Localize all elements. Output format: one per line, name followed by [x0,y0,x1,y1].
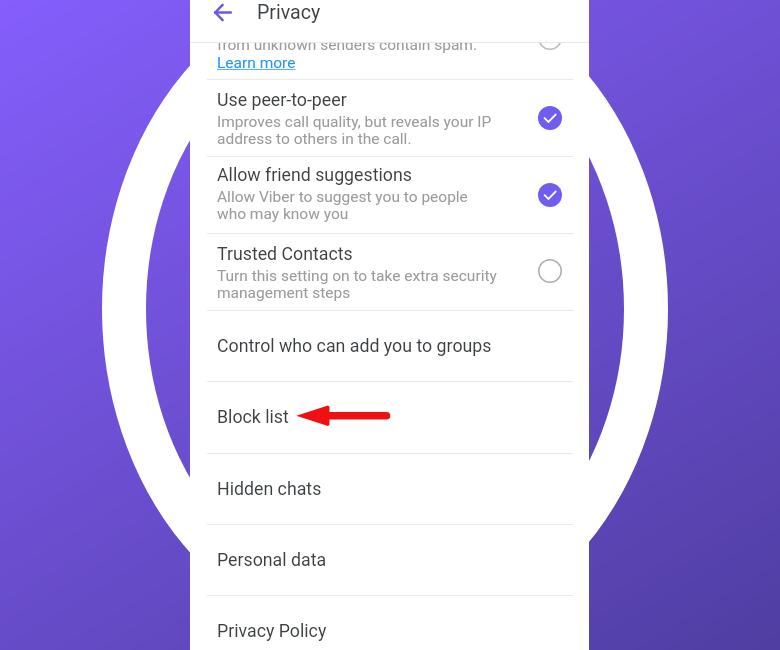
staticText: Turn this setting on to take extra secur… [217,267,497,302]
button[interactable]: Trusted Contacts [190,233,589,310]
button[interactable]: Personal data [190,524,589,596]
button[interactable]: Allow friend suggestions [532,177,568,213]
button[interactable]: Hidden chats [190,453,589,524]
button[interactable]: Control who can add you to groups [190,310,589,381]
staticText: Use peer-to-peer [217,90,347,111]
staticText: Allow Viber to suggest you to people who… [217,188,468,223]
staticText: Allow friend suggestions [217,165,412,186]
staticText: Trusted Contacts [217,244,353,265]
button[interactable]: from unknown senders contain spam. [190,43,589,79]
staticText: Learn more [217,54,296,72]
button[interactable]: Privacy Policy [190,595,589,650]
staticText: Personal data [217,550,327,571]
staticText: from unknown senders contain spam. [217,36,478,54]
button[interactable]: Use peer-to-peer [190,79,589,156]
staticText: Privacy [257,1,321,24]
staticText: Hidden chats [217,479,322,500]
button[interactable]: Block list [190,381,589,453]
button[interactable]: Trusted Contacts [532,253,568,289]
staticText: Block list [217,407,289,428]
button[interactable]: Allow friend suggestions [190,156,589,233]
staticText: Control who can add you to groups [217,336,492,357]
button[interactable]: Back [202,0,242,32]
button[interactable]: Use peer-to-peer [532,100,568,136]
staticText: Privacy Policy [217,621,327,642]
staticText: Improves call quality, but reveals your … [217,113,492,148]
